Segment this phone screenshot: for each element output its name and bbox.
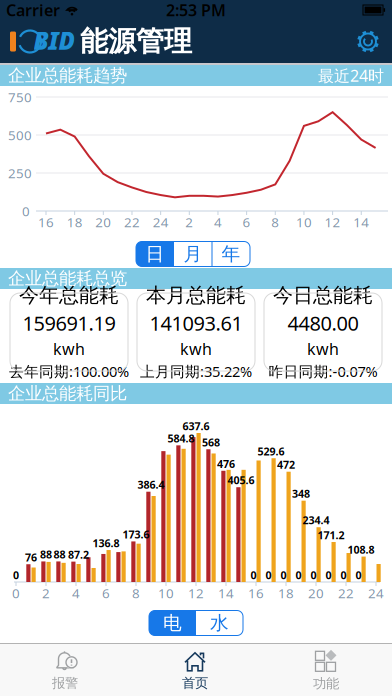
staticText: 476	[217, 457, 235, 471]
staticText: 76	[25, 550, 37, 564]
staticText: 12	[325, 213, 341, 231]
staticText: 功能	[313, 675, 339, 692]
staticText: 20	[308, 584, 324, 602]
staticText: 568	[202, 435, 220, 449]
staticText: 电	[163, 611, 182, 634]
staticText: 0	[22, 202, 30, 220]
staticText: 87.2	[68, 547, 89, 562]
staticText: 6	[243, 213, 251, 231]
staticText: 12	[188, 584, 204, 602]
staticText: 4	[72, 584, 80, 602]
staticText: 0	[340, 568, 346, 582]
staticText: 171.2	[317, 528, 344, 542]
staticText: 348	[292, 487, 310, 501]
staticText: 108.8	[347, 542, 374, 557]
staticText: 16	[248, 584, 264, 602]
staticText: 529.6	[257, 444, 284, 458]
staticText: 本月总能耗	[146, 283, 246, 308]
staticText: 173.6	[122, 527, 149, 541]
staticText: kwh	[307, 338, 339, 359]
staticText: 136.8	[92, 536, 119, 550]
staticText: 去年同期:100.00%	[9, 361, 129, 381]
button[interactable]: 日	[136, 241, 174, 266]
staticText: 141093.61	[149, 310, 242, 336]
staticText: 386.4	[137, 478, 164, 492]
button[interactable]: 电	[149, 610, 196, 635]
staticText: 2:53 PM	[166, 0, 226, 21]
staticText: 18	[67, 213, 83, 231]
staticText: 8	[271, 213, 279, 231]
staticText: 234.4	[302, 513, 329, 527]
staticText: 0	[295, 568, 301, 582]
staticText: 今年总能耗	[19, 283, 119, 308]
staticText: kwh	[53, 338, 85, 359]
staticText: 年	[221, 242, 240, 265]
staticText: 637.6	[182, 419, 209, 433]
staticText: 88	[53, 547, 65, 562]
staticText: 472	[277, 458, 295, 472]
staticText: kwh	[180, 338, 212, 359]
staticText: 584.8	[167, 431, 194, 445]
staticText: 8	[132, 584, 140, 602]
staticText: 首页	[182, 675, 208, 691]
staticText: 159691.19	[22, 310, 115, 336]
staticText: 20	[95, 213, 111, 231]
staticText: 2	[185, 213, 193, 231]
staticText: 日	[145, 242, 164, 265]
staticText: 24	[368, 584, 384, 602]
staticText: BID	[33, 25, 74, 56]
staticText: 88	[40, 547, 52, 562]
staticText: 报警	[52, 675, 78, 691]
staticText: 500	[8, 126, 32, 144]
staticText: Carrier	[6, 0, 60, 21]
staticText: 0	[280, 568, 286, 582]
staticText: 企业总能耗同比	[8, 383, 127, 404]
button[interactable]: 年	[212, 241, 250, 266]
staticText: 250	[8, 164, 32, 182]
staticText: 16	[38, 213, 54, 231]
staticText: 14	[218, 584, 234, 602]
button[interactable]: Settings	[350, 23, 386, 59]
staticText: 0	[250, 568, 256, 582]
staticText: 上月同期:35.22%	[140, 361, 252, 381]
button[interactable]: 功能	[260, 645, 392, 695]
button[interactable]: 月	[174, 241, 212, 266]
button[interactable]: 报警	[0, 645, 130, 695]
staticText: 2	[42, 584, 50, 602]
staticText: 水	[210, 611, 229, 634]
staticText: 昨日同期:-0.07%	[268, 361, 377, 381]
staticText: 最近24时	[318, 65, 384, 86]
staticText: 10	[158, 584, 174, 602]
staticText: 0	[13, 568, 19, 582]
staticText: 能源管理	[80, 24, 192, 59]
button[interactable]: 水	[196, 610, 243, 635]
staticText: 月	[183, 242, 202, 265]
staticText: 14	[353, 213, 369, 231]
staticText: 750	[8, 88, 32, 106]
staticText: 4480.00	[287, 310, 358, 336]
staticText: 22	[338, 584, 354, 602]
staticText: 0	[355, 568, 361, 582]
staticText: 6	[102, 584, 110, 602]
staticText: 4	[214, 213, 222, 231]
button[interactable]: 首页	[130, 645, 260, 695]
staticText: 企业总能耗趋势	[8, 65, 127, 86]
staticText: 0	[12, 584, 20, 602]
staticText: 企业总能耗总览	[8, 268, 127, 289]
staticText: 10	[296, 213, 312, 231]
staticText: 0	[265, 568, 271, 582]
staticText: 0	[325, 568, 331, 582]
staticText: 24	[153, 213, 169, 231]
staticText: 405.6	[227, 473, 254, 487]
staticText: 22	[124, 213, 140, 231]
staticText: 18	[278, 584, 294, 602]
staticText: 0	[310, 568, 316, 582]
staticText: 今日总能耗	[273, 283, 373, 308]
